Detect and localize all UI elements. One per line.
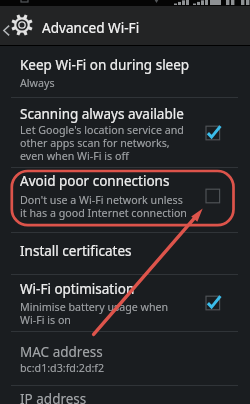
staticText: Always [20, 76, 55, 91]
staticText: Wi-Fi is on [20, 313, 71, 328]
staticText: Minimise battery usage when [20, 300, 169, 315]
staticText: Avoid poor connections [20, 172, 170, 190]
button[interactable] [0, 98, 250, 166]
staticText: MAC address [20, 343, 103, 361]
staticText: IP address [20, 390, 87, 404]
button[interactable] [0, 384, 250, 404]
button[interactable]: Scanning always available, on [196, 116, 230, 150]
staticText: bc:d1:d3:fd:2d:f2 [20, 361, 105, 376]
button[interactable] [0, 330, 250, 383]
button[interactable] [0, 232, 250, 273]
button[interactable]: Navigate up, Advanced Wi-Fi [0, 6, 250, 45]
staticText: Don't use a Wi-Fi network unless [20, 193, 183, 208]
button[interactable] [0, 167, 250, 231]
staticText: even when Wi-Fi is off [20, 149, 129, 164]
button[interactable] [0, 274, 250, 329]
button[interactable] [0, 46, 250, 97]
staticText: Wi-Fi optimisation [20, 280, 135, 298]
button[interactable]: Wi-Fi optimisation, on [196, 286, 230, 320]
staticText: Keep Wi-Fi on during sleep [20, 56, 190, 74]
button[interactable]: Avoid poor connections, off [196, 179, 230, 213]
staticText: Install certificates [20, 242, 132, 260]
staticText: Scanning always available [20, 105, 184, 123]
staticText: Let Google's location service and [20, 123, 184, 138]
staticText: Advanced Wi-Fi [42, 18, 140, 37]
staticText: other apps scan for networks, [20, 136, 170, 151]
staticText: it has a good Internet connection [20, 206, 187, 221]
